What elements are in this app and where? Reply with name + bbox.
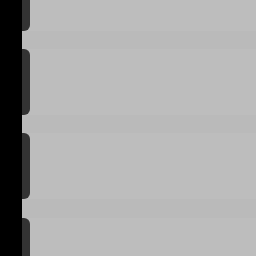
button[interactable]: Archive xyxy=(0,133,256,199)
button[interactable]: Starred xyxy=(0,49,256,115)
button[interactable]: Inbox xyxy=(0,0,256,31)
button[interactable]: Drafts xyxy=(0,218,256,256)
